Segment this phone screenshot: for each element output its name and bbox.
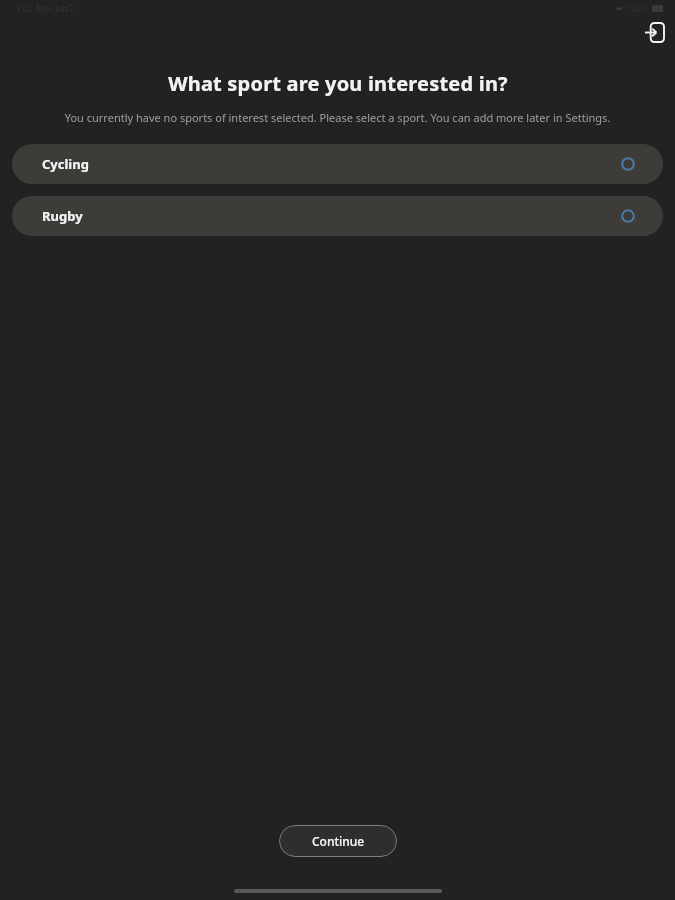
- button[interactable]: Log out: [640, 18, 668, 46]
- button[interactable]: Continue: [279, 825, 397, 857]
- button[interactable]: Cycling: [12, 144, 663, 184]
- staticText: Continue: [312, 833, 365, 849]
- staticText: Rugby: [42, 207, 83, 225]
- staticText: Cycling: [42, 155, 89, 173]
- button[interactable]: Rugby: [12, 196, 663, 236]
- staticText: You currently have no sports of interest…: [20, 110, 655, 125]
- staticText: 100%: [627, 3, 648, 14]
- staticText: What sport are you interested in?: [168, 70, 508, 97]
- staticText: 9:02 Mon Jun 2: [16, 3, 74, 14]
